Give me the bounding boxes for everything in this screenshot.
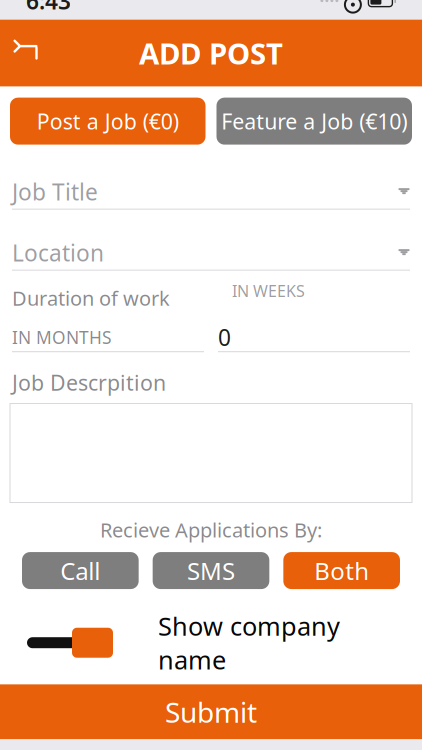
staticText: Duration of work	[12, 285, 170, 311]
staticText: Call	[60, 555, 100, 586]
staticText: Job Title	[12, 177, 98, 207]
button[interactable]: Submit	[0, 684, 422, 739]
button[interactable]: Feature a Job (€10)	[216, 98, 412, 145]
button[interactable]: SMS	[153, 552, 269, 589]
button[interactable]: Post a Job (€0)	[10, 98, 205, 145]
staticText: IN WEEKS	[232, 280, 305, 301]
staticText: IN MONTHS	[12, 326, 112, 349]
staticText: ADD POST	[139, 34, 283, 73]
button[interactable]: Job Title	[0, 175, 422, 210]
staticText: 6:43	[26, 0, 71, 16]
staticText: Location	[12, 238, 104, 268]
staticText: Show company name	[158, 609, 340, 676]
staticText: Feature a Job (€10)	[221, 107, 407, 135]
button[interactable]: Show company name	[31, 626, 113, 660]
staticText: Both	[314, 555, 369, 586]
staticText: SMS	[187, 555, 235, 586]
button[interactable]: Call	[22, 552, 139, 589]
staticText: Submit	[165, 693, 257, 730]
button[interactable]: Back	[0, 30, 52, 76]
button[interactable]: Location	[0, 236, 422, 271]
staticText: 0	[218, 322, 231, 352]
staticText: Job Descrpition	[12, 368, 166, 396]
staticText: Post a Job (€0)	[37, 107, 179, 135]
staticText: Recieve Applications By:	[100, 516, 322, 543]
button[interactable]: Both	[283, 552, 400, 589]
